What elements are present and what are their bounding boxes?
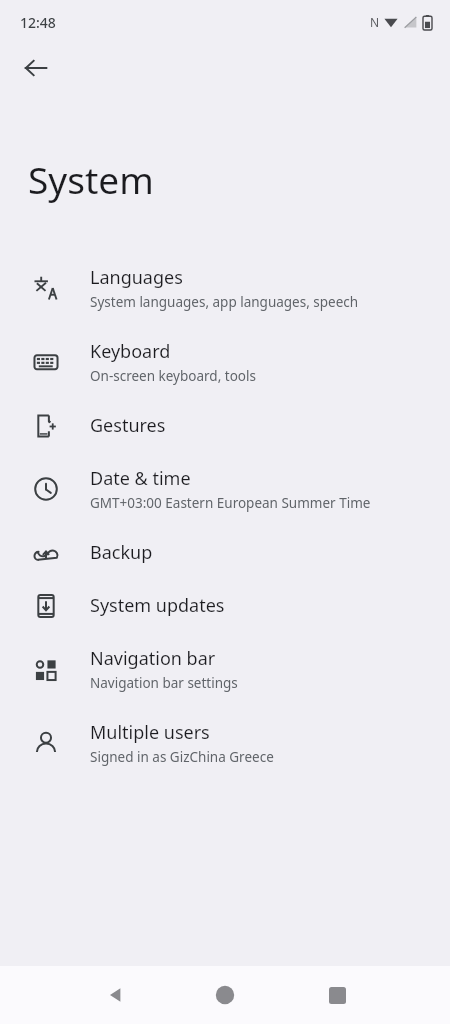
staticText: Keyboard: [90, 339, 171, 364]
button[interactable]: Keyboard: [0, 325, 450, 399]
staticText: System languages, app languages, speech: [90, 293, 359, 311]
staticText: Multiple users: [90, 720, 210, 745]
staticText: On-screen keyboard, tools: [90, 367, 256, 385]
staticText: Languages: [90, 265, 183, 290]
button[interactable]: Date & time: [0, 452, 450, 526]
staticText: System: [28, 154, 154, 204]
button[interactable]: Home: [205, 975, 245, 1015]
staticText: Backup: [90, 540, 153, 565]
button[interactable]: Gestures: [0, 399, 450, 452]
staticText: Navigation bar: [90, 646, 216, 671]
button[interactable]: Languages: [0, 251, 450, 325]
staticText: Navigation bar settings: [90, 674, 238, 692]
button[interactable]: Back: [96, 975, 136, 1015]
button[interactable]: System updates: [0, 579, 450, 632]
staticText: GMT+03:00 Eastern European Summer Time: [90, 494, 371, 512]
button[interactable]: Back: [12, 44, 60, 92]
staticText: Date & time: [90, 466, 191, 491]
staticText: 12:48: [20, 13, 56, 32]
button[interactable]: Recent apps: [317, 975, 357, 1015]
button[interactable]: Navigation bar: [0, 632, 450, 706]
staticText: System updates: [90, 593, 225, 618]
button[interactable]: Multiple users: [0, 706, 450, 780]
staticText: N: [370, 14, 380, 30]
staticText: Signed in as GizChina Greece: [90, 748, 274, 766]
staticText: Gestures: [90, 413, 166, 438]
button[interactable]: Backup: [0, 526, 450, 579]
